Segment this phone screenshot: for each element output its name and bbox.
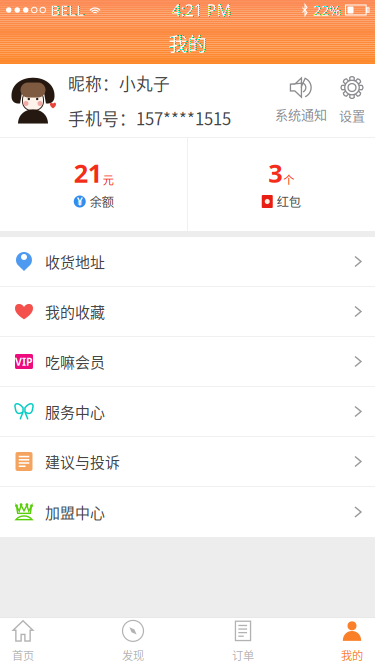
staticText: BELL [50, 0, 84, 20]
staticText: 我的 [168, 29, 206, 57]
button[interactable]: 加盟中心 [0, 487, 375, 537]
staticText: 红包 [277, 193, 301, 210]
staticText: 收货地址 [45, 251, 105, 272]
button[interactable]: 3 [187, 138, 375, 231]
button[interactable]: 发现 [110, 618, 156, 667]
staticText: 吃嘛会员 [45, 351, 105, 372]
staticText: 订单 [232, 647, 254, 663]
staticText: ¥ [77, 194, 83, 208]
staticText: 4:21 PM [172, 0, 232, 21]
button[interactable]: 服务中心 [0, 387, 375, 437]
button[interactable]: 收货地址 [0, 237, 375, 287]
staticText: 服务中心 [45, 401, 105, 422]
button[interactable]: 系统通知 [275, 77, 327, 123]
button[interactable]: 建议与投诉 [0, 437, 375, 487]
staticText: VIP [15, 354, 33, 369]
staticText: 首页 [12, 647, 34, 663]
button[interactable]: VIP [0, 337, 375, 387]
button[interactable]: 首页 [0, 618, 46, 667]
staticText: 余额 [90, 193, 114, 210]
button[interactable]: 我的 [329, 618, 375, 667]
staticText: 手机号：157****1515 [68, 106, 231, 130]
staticText: 22% [313, 0, 341, 20]
staticText: 个 [283, 171, 294, 188]
button[interactable]: 21 [0, 138, 187, 231]
staticText: 我的 [341, 647, 363, 663]
staticText: 加盟中心 [45, 501, 105, 523]
button[interactable]: 订单 [220, 618, 266, 667]
staticText: 设置 [339, 105, 365, 124]
staticText: 3 [268, 156, 282, 190]
staticText: 21 [74, 156, 102, 190]
button[interactable]: 我的收藏 [0, 287, 375, 337]
staticText: 昵称：小丸子 [68, 71, 170, 95]
staticText: 元 [103, 171, 114, 188]
button[interactable]: 设置 [337, 76, 367, 124]
staticText: 系统通知 [275, 104, 327, 123]
staticText: 我的收藏 [45, 301, 105, 322]
staticText: 发现 [122, 647, 144, 663]
staticText: 建议与投诉 [45, 451, 120, 472]
